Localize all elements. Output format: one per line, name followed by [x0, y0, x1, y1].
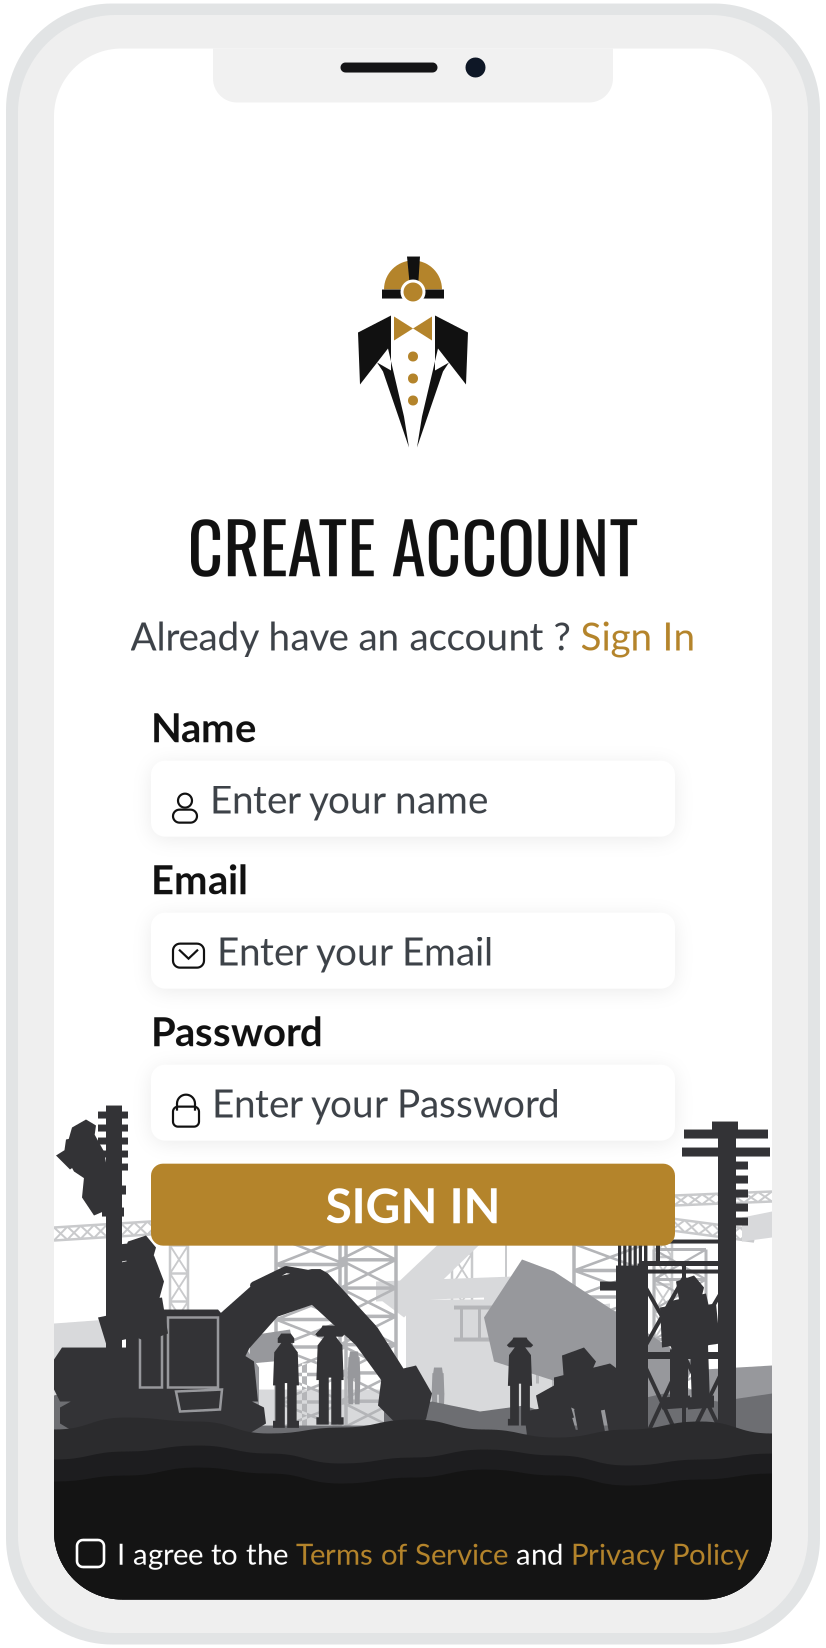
button[interactable]: SIGN IN — [151, 1164, 675, 1246]
button[interactable]: Enter your Email — [151, 913, 675, 989]
button[interactable]: Enter your name — [151, 761, 675, 837]
staticText: CREATE ACCOUNT — [187, 493, 638, 596]
button[interactable]: Sign In — [580, 612, 695, 659]
button[interactable]: Privacy Policy — [571, 1536, 749, 1571]
button[interactable]: Terms of Service — [296, 1536, 508, 1571]
staticText: Terms of Service — [296, 1536, 508, 1571]
staticText: Password — [151, 1007, 323, 1055]
staticText: Enter your Email — [217, 927, 493, 974]
staticText: and — [508, 1536, 571, 1571]
staticText: Already have an account ? — [130, 612, 580, 659]
staticText: Privacy Policy — [571, 1536, 749, 1571]
staticText: Sign In — [580, 612, 695, 659]
staticText: Enter your name — [210, 775, 488, 822]
button[interactable]: I agree to the terms — [77, 1540, 104, 1567]
button[interactable]: Enter your Password — [151, 1065, 675, 1141]
staticText: I agree to the — [117, 1536, 296, 1571]
staticText: Name — [151, 703, 256, 751]
staticText: Enter your Password — [212, 1079, 560, 1126]
staticText: SIGN IN — [325, 1176, 500, 1233]
staticText: Email — [151, 855, 248, 903]
